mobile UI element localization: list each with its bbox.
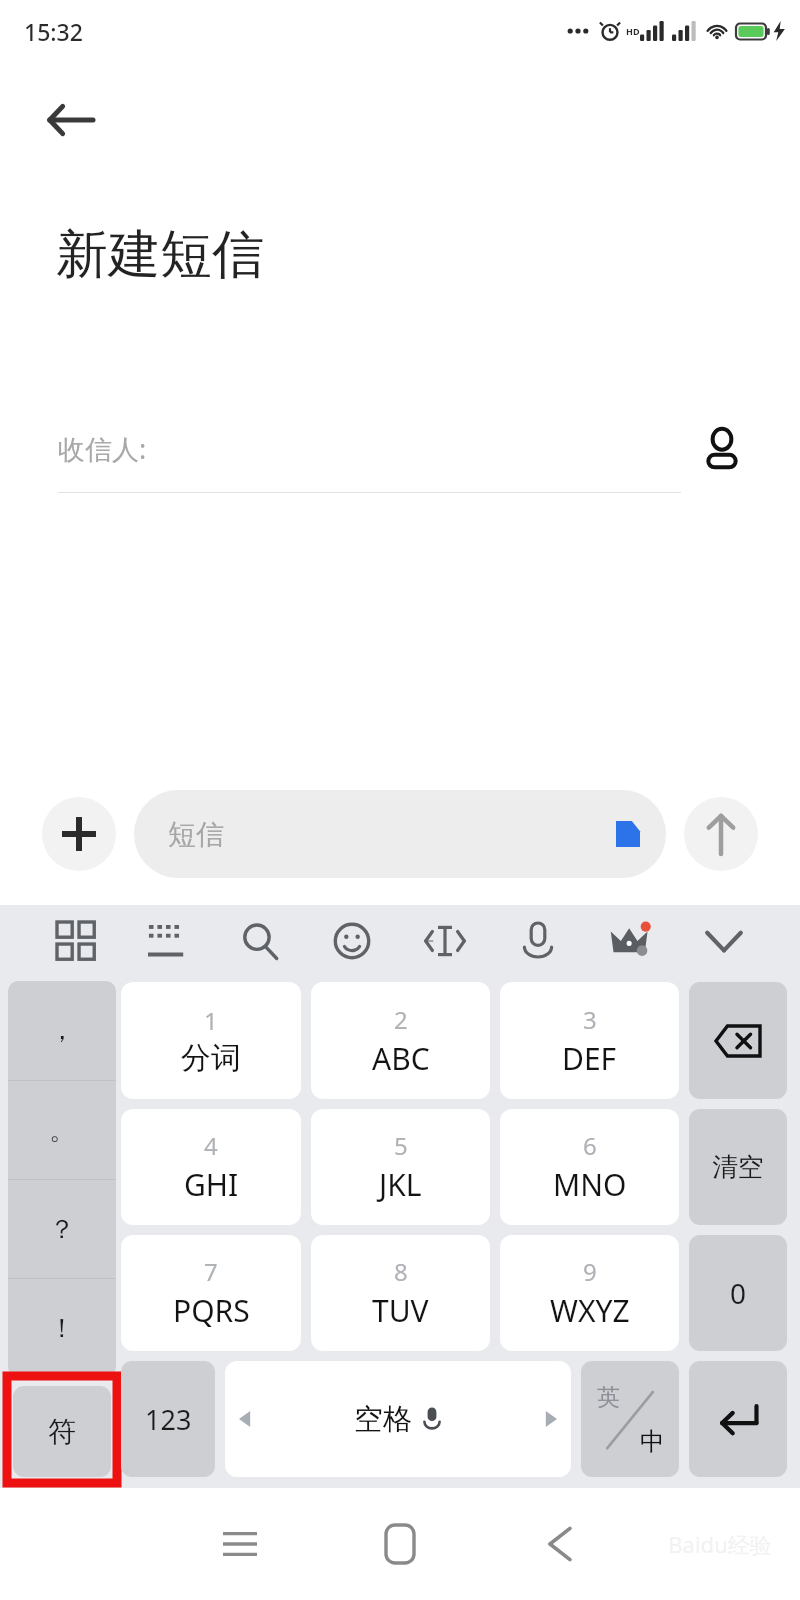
staticText: Baidu经验	[668, 1529, 772, 1559]
button[interactable]: Recents	[160, 1488, 320, 1600]
button[interactable]: Contacts	[694, 420, 750, 476]
button[interactable]: 。	[8, 1081, 116, 1179]
button[interactable]: 短信	[168, 790, 642, 878]
button[interactable]: 5	[311, 1109, 490, 1225]
button[interactable]: ！	[8, 1279, 116, 1377]
button[interactable]: 符	[13, 1386, 111, 1477]
button[interactable]: Back	[38, 88, 102, 152]
button[interactable]: Back	[480, 1488, 640, 1600]
staticText: 新建短信	[56, 222, 264, 288]
button[interactable]: 清空	[689, 1109, 787, 1225]
button[interactable]: 3	[500, 982, 679, 1099]
staticText: TUV	[372, 1290, 429, 1331]
staticText: 英	[597, 1383, 620, 1412]
staticText: 。	[49, 1114, 75, 1147]
button[interactable]: Enter	[689, 1361, 787, 1477]
button[interactable]: 9	[500, 1235, 679, 1351]
staticText: ！	[49, 1312, 75, 1345]
staticText: 短信	[168, 817, 224, 852]
button[interactable]: Move cursor	[398, 905, 491, 977]
button[interactable]: 6	[500, 1109, 679, 1225]
button[interactable]: Backspace	[689, 982, 787, 1099]
staticText: GHI	[184, 1164, 239, 1205]
button[interactable]: ，	[8, 981, 116, 1080]
staticText: 123	[145, 1401, 192, 1438]
staticText: 空格	[354, 1401, 412, 1438]
button[interactable]: 123	[121, 1361, 215, 1477]
staticText: DEF	[562, 1038, 617, 1079]
staticText: 收信人:	[58, 430, 147, 467]
button[interactable]: 0	[689, 1235, 787, 1351]
staticText: 0	[730, 1274, 747, 1312]
button[interactable]: 7	[121, 1235, 301, 1351]
staticText: ABC	[372, 1038, 430, 1079]
staticText: WXYZ	[550, 1290, 630, 1331]
staticText: 6	[583, 1129, 597, 1162]
staticText: HD	[626, 25, 640, 37]
button[interactable]: 2	[311, 982, 490, 1099]
button[interactable]: 收信人:	[58, 402, 750, 494]
staticText: 15:32	[24, 16, 83, 47]
staticText: 9	[583, 1255, 597, 1288]
staticText: 7	[204, 1255, 218, 1288]
button[interactable]: Send	[684, 797, 758, 871]
button[interactable]: 1	[121, 982, 301, 1099]
button[interactable]: Home	[320, 1488, 480, 1600]
button[interactable]: Themes	[584, 905, 677, 977]
staticText: MNO	[553, 1164, 627, 1205]
button[interactable]: Keyboard	[122, 905, 214, 977]
staticText: 4	[204, 1129, 218, 1162]
staticText: 2	[394, 1003, 408, 1036]
button[interactable]: 4	[121, 1109, 301, 1225]
button[interactable]: 8	[311, 1235, 490, 1351]
staticText: 5	[394, 1129, 408, 1162]
staticText: 符	[48, 1414, 76, 1449]
button[interactable]: Hide keyboard	[677, 905, 770, 977]
staticText: 中	[640, 1426, 665, 1457]
staticText: 清空	[712, 1151, 764, 1184]
button[interactable]: Emoji	[306, 905, 398, 977]
button[interactable]: Add attachment	[42, 797, 116, 871]
staticText: ？	[49, 1213, 75, 1246]
staticText: 1	[204, 1004, 218, 1037]
button[interactable]: Voice input	[491, 905, 584, 977]
button[interactable]: Search	[214, 905, 306, 977]
staticText: JKL	[379, 1164, 422, 1205]
staticText: PQRS	[173, 1290, 250, 1331]
button[interactable]: 空格	[239, 1361, 557, 1477]
button[interactable]: 英	[581, 1361, 679, 1477]
button[interactable]: ？	[8, 1180, 116, 1278]
staticText: ，	[49, 1014, 75, 1047]
staticText: 分词	[181, 1039, 241, 1077]
button[interactable]: Keyboard layouts	[30, 905, 122, 977]
staticText: 8	[394, 1255, 408, 1288]
staticText: 3	[583, 1003, 597, 1036]
